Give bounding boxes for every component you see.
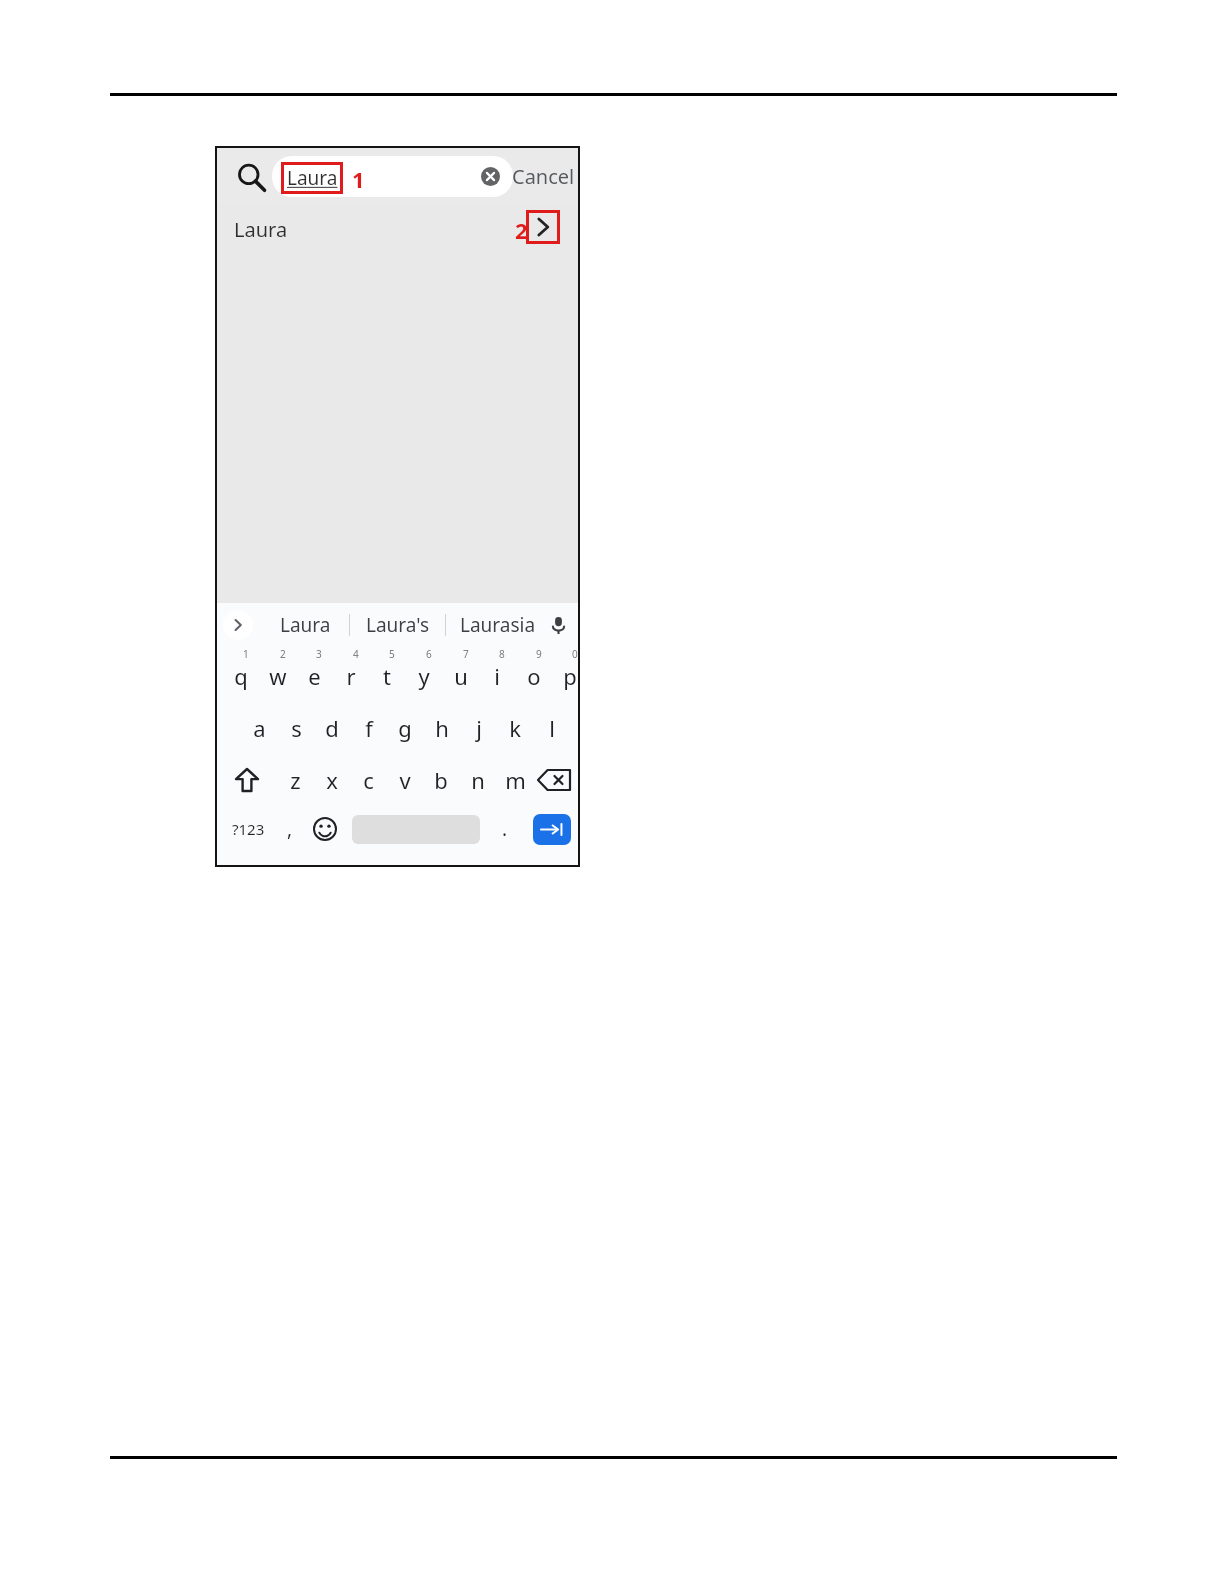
button[interactable]: Laurasia	[452, 609, 544, 641]
staticText: Cancel	[512, 163, 575, 190]
staticText: Laura	[287, 165, 338, 191]
button[interactable]: x	[318, 764, 346, 796]
button[interactable]: f	[355, 712, 383, 744]
staticText: s	[291, 713, 302, 743]
staticText: k	[509, 713, 521, 743]
staticText: y	[418, 661, 430, 691]
staticText: 3	[316, 647, 322, 661]
staticText: 5	[389, 647, 395, 661]
button[interactable]: More suggestions	[223, 610, 253, 640]
button[interactable]: Search	[235, 161, 267, 193]
staticText: 2	[515, 215, 528, 245]
button[interactable]: r	[337, 660, 365, 692]
button[interactable]: ,	[277, 813, 303, 845]
staticText: 4	[353, 647, 359, 661]
button[interactable]: k	[501, 712, 529, 744]
staticText: .	[502, 816, 508, 842]
button[interactable]: Clear text	[481, 167, 500, 186]
button[interactable]: l	[538, 712, 566, 744]
staticText: z	[290, 765, 301, 795]
button[interactable]: b	[427, 764, 455, 796]
staticText: 2	[280, 647, 286, 661]
staticText: Laura	[234, 216, 288, 243]
button[interactable]: v	[391, 764, 419, 796]
button[interactable]: Laura	[215, 205, 578, 253]
button[interactable]: y	[410, 660, 438, 692]
button[interactable]: n	[464, 764, 492, 796]
button[interactable]: e	[300, 660, 328, 692]
staticText: o	[527, 661, 541, 691]
staticText: d	[325, 713, 339, 743]
button[interactable]: a	[245, 712, 273, 744]
staticText: x	[326, 765, 338, 795]
button[interactable]: Enter	[533, 814, 571, 845]
staticText: t	[383, 661, 391, 691]
button[interactable]: d	[318, 712, 346, 744]
button[interactable]: p	[556, 660, 584, 692]
button[interactable]: o	[520, 660, 548, 692]
staticText: h	[435, 713, 449, 743]
button[interactable]: Laura's	[357, 609, 439, 641]
button[interactable]: Backspace	[535, 765, 573, 795]
button[interactable]: Emoji	[310, 814, 340, 844]
button[interactable]: Voice input	[545, 612, 572, 639]
button[interactable]: h	[428, 712, 456, 744]
staticText: r	[346, 661, 356, 691]
staticText: j	[476, 713, 482, 743]
staticText: n	[471, 765, 485, 795]
button[interactable]: t	[373, 660, 401, 692]
button[interactable]: Laura	[267, 609, 343, 641]
button[interactable]: s	[282, 712, 310, 744]
staticText: g	[398, 713, 412, 743]
button[interactable]: u	[447, 660, 475, 692]
button[interactable]: Cancel	[512, 161, 576, 191]
staticText: f	[365, 713, 373, 743]
staticText: 1	[352, 164, 365, 194]
staticText: c	[363, 765, 374, 795]
staticText: u	[454, 661, 468, 691]
staticText: v	[399, 765, 411, 795]
button[interactable]: c	[354, 764, 382, 796]
button[interactable]: i	[483, 660, 511, 692]
button[interactable]: .	[492, 813, 518, 845]
staticText: Laura's	[366, 612, 430, 638]
button[interactable]: g	[391, 712, 419, 744]
button[interactable]: w	[264, 660, 292, 692]
staticText: 6	[426, 647, 432, 661]
staticText: l	[549, 713, 555, 743]
staticText: ,	[287, 816, 293, 842]
staticText: Laurasia	[460, 612, 536, 638]
staticText: Laura	[280, 612, 331, 638]
staticText: w	[269, 661, 287, 691]
staticText: 8	[499, 647, 505, 661]
button[interactable]: q	[227, 660, 255, 692]
button[interactable]: ?123	[223, 813, 273, 845]
button[interactable]: m	[501, 764, 529, 796]
button[interactable]	[272, 156, 513, 197]
staticText: e	[308, 661, 321, 691]
staticText: b	[434, 765, 448, 795]
button[interactable]: j	[465, 712, 493, 744]
button[interactable]: Open Laura	[526, 210, 560, 244]
staticText: 7	[463, 647, 469, 661]
staticText: 9	[536, 647, 542, 661]
button[interactable]: Shift	[230, 763, 264, 797]
staticText: p	[563, 661, 577, 691]
staticText: i	[494, 661, 500, 691]
staticText: ?123	[232, 819, 265, 839]
staticText: a	[253, 713, 266, 743]
button[interactable]: z	[281, 764, 309, 796]
staticText: q	[234, 661, 248, 691]
staticText: 1	[243, 647, 249, 661]
staticText: 0	[572, 647, 578, 661]
staticText: m	[505, 765, 526, 795]
